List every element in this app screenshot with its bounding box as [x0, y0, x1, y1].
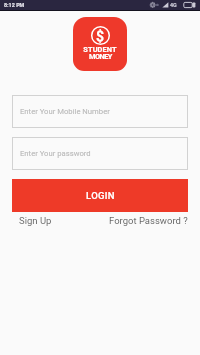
staticText: MONEY [89, 52, 112, 61]
staticText: 8:12 PM [4, 2, 25, 8]
staticText: Forgot Password ? [109, 215, 188, 226]
button[interactable]: LOGIN [12, 179, 188, 212]
staticText: STUDENT [83, 45, 117, 54]
staticText: Enter Your Mobile Number [20, 107, 110, 116]
staticText: Sign Up [19, 215, 52, 226]
staticText: 4G [170, 2, 177, 8]
button[interactable]: Sign Up [19, 213, 52, 228]
button[interactable]: Enter Your password [12, 137, 188, 170]
staticText: LOGIN [86, 190, 115, 201]
staticText: Enter Your password [20, 149, 91, 158]
staticText: $ [96, 28, 105, 44]
button[interactable]: Forgot Password ? [109, 213, 188, 228]
button[interactable]: Student Money logo [73, 17, 127, 71]
button[interactable]: Enter Your Mobile Number [12, 95, 188, 128]
